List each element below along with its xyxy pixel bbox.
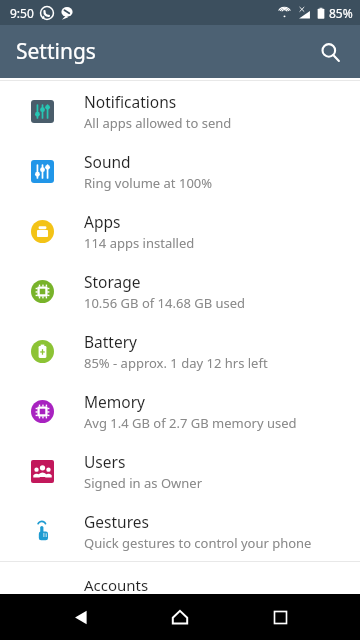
staticText: Storage bbox=[84, 271, 141, 292]
staticText: Ring volume at 100% bbox=[84, 174, 213, 192]
button[interactable]: Battery bbox=[0, 321, 360, 381]
staticText: 85% bbox=[329, 5, 353, 21]
button[interactable]: Search bbox=[310, 32, 350, 72]
button[interactable]: Memory bbox=[0, 381, 360, 441]
staticText: All apps allowed to send bbox=[84, 114, 232, 132]
button[interactable]: Storage bbox=[0, 261, 360, 321]
button[interactable]: Back bbox=[60, 597, 100, 637]
button[interactable]: Users bbox=[0, 441, 360, 501]
staticText: Users bbox=[84, 451, 126, 472]
staticText: Battery bbox=[84, 331, 138, 352]
staticText: Notifications bbox=[84, 91, 177, 112]
staticText: Sound bbox=[84, 151, 131, 172]
staticText: Accounts bbox=[84, 575, 149, 595]
staticText: 9:50 bbox=[10, 5, 34, 21]
button[interactable]: Home bbox=[160, 597, 200, 637]
button[interactable]: Gestures bbox=[0, 501, 360, 561]
staticText: Signed in as Owner bbox=[84, 474, 203, 492]
staticText: 85% - approx. 1 day 12 hrs left bbox=[84, 354, 268, 372]
button[interactable]: Recent apps bbox=[260, 597, 300, 637]
staticText: 114 apps installed bbox=[84, 234, 195, 252]
staticText: Memory bbox=[84, 391, 145, 412]
staticText: Settings bbox=[16, 37, 96, 66]
staticText: Gestures bbox=[84, 511, 149, 532]
button[interactable]: Apps bbox=[0, 201, 360, 261]
button[interactable]: Notifications bbox=[0, 81, 360, 141]
staticText: Quick gestures to control your phone bbox=[84, 534, 312, 552]
staticText: Apps bbox=[84, 211, 121, 232]
staticText: 10.56 GB of 14.68 GB used bbox=[84, 294, 246, 312]
button[interactable]: Sound bbox=[0, 141, 360, 201]
staticText: Avg 1.4 GB of 2.7 GB memory used bbox=[84, 414, 297, 432]
